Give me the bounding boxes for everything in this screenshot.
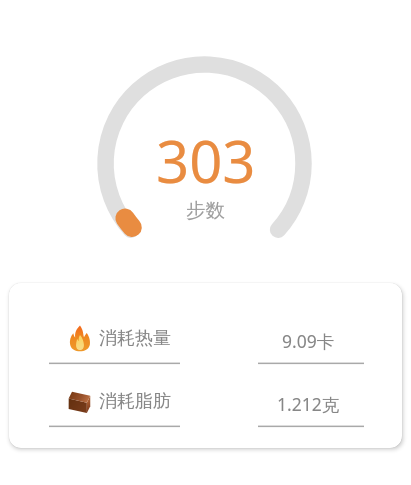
staticText: 303	[156, 121, 256, 200]
other: Fat burned	[64, 384, 99, 419]
button[interactable]: Fat burned	[9, 345, 402, 408]
staticText: 消耗热量	[99, 327, 171, 350]
other: Calories burned	[66, 324, 94, 352]
staticText: 1.212克	[277, 392, 340, 416]
staticText: 9.09卡	[282, 329, 335, 353]
button[interactable]: Calories burned	[9, 283, 402, 345]
staticText: 消耗脂肪	[99, 390, 171, 413]
button[interactable]: Step progress ring	[88, 47, 321, 280]
staticText: 步数	[186, 198, 225, 223]
